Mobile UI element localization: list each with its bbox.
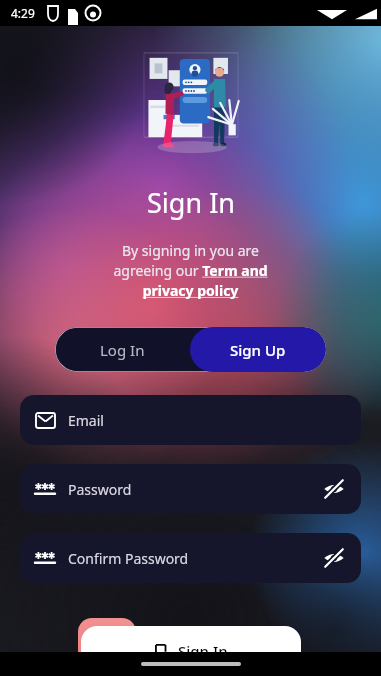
staticText: 4:29 bbox=[11, 5, 35, 21]
button[interactable]: Password bbox=[20, 464, 361, 514]
button[interactable]: Show password bbox=[321, 476, 347, 502]
staticText: Log In bbox=[100, 340, 145, 360]
staticText: Sign In bbox=[147, 184, 235, 221]
staticText: Password bbox=[68, 480, 132, 499]
button[interactable]: Email bbox=[20, 395, 361, 445]
staticText: Confirm Password bbox=[68, 549, 189, 568]
button[interactable]: Show password bbox=[321, 545, 347, 571]
button[interactable]: Sign Up bbox=[190, 327, 326, 372]
button[interactable]: Sign In bbox=[81, 626, 301, 676]
button[interactable]: Log In bbox=[55, 327, 190, 372]
staticText: Sign In bbox=[178, 641, 228, 661]
button[interactable]: By signing in you are agreeing our Term … bbox=[0, 241, 381, 300]
button[interactable]: Confirm Password bbox=[20, 533, 361, 583]
staticText: Email bbox=[68, 411, 104, 430]
staticText: Sign Up bbox=[230, 340, 286, 360]
